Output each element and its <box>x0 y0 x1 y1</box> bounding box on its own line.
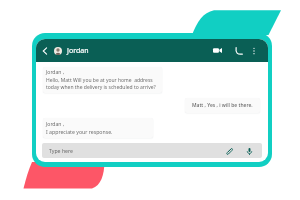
staticText: Type here <box>49 147 73 154</box>
button[interactable]: Call <box>232 44 245 57</box>
button[interactable]: Attach file <box>224 146 234 156</box>
button[interactable]: Type here <box>42 143 262 158</box>
button[interactable]: Jordan , <box>43 67 162 93</box>
staticText: Hello, Matt Will you be at your home add… <box>46 77 159 90</box>
button[interactable]: Back <box>38 44 51 57</box>
button[interactable]: Video call <box>211 44 224 57</box>
button[interactable]: Matt , Yes , i will be there. <box>185 98 260 113</box>
staticText: Matt , Yes , i will be there. <box>192 102 253 109</box>
button[interactable]: More options <box>248 45 259 56</box>
button[interactable]: Voice message <box>244 146 254 156</box>
staticText: Jordan , <box>46 69 64 76</box>
staticText: Jordan <box>67 46 89 56</box>
staticText: I appreciate your response. <box>46 128 113 135</box>
staticText: Jordan , <box>46 121 64 128</box>
button[interactable]: Jordan , <box>43 118 153 138</box>
